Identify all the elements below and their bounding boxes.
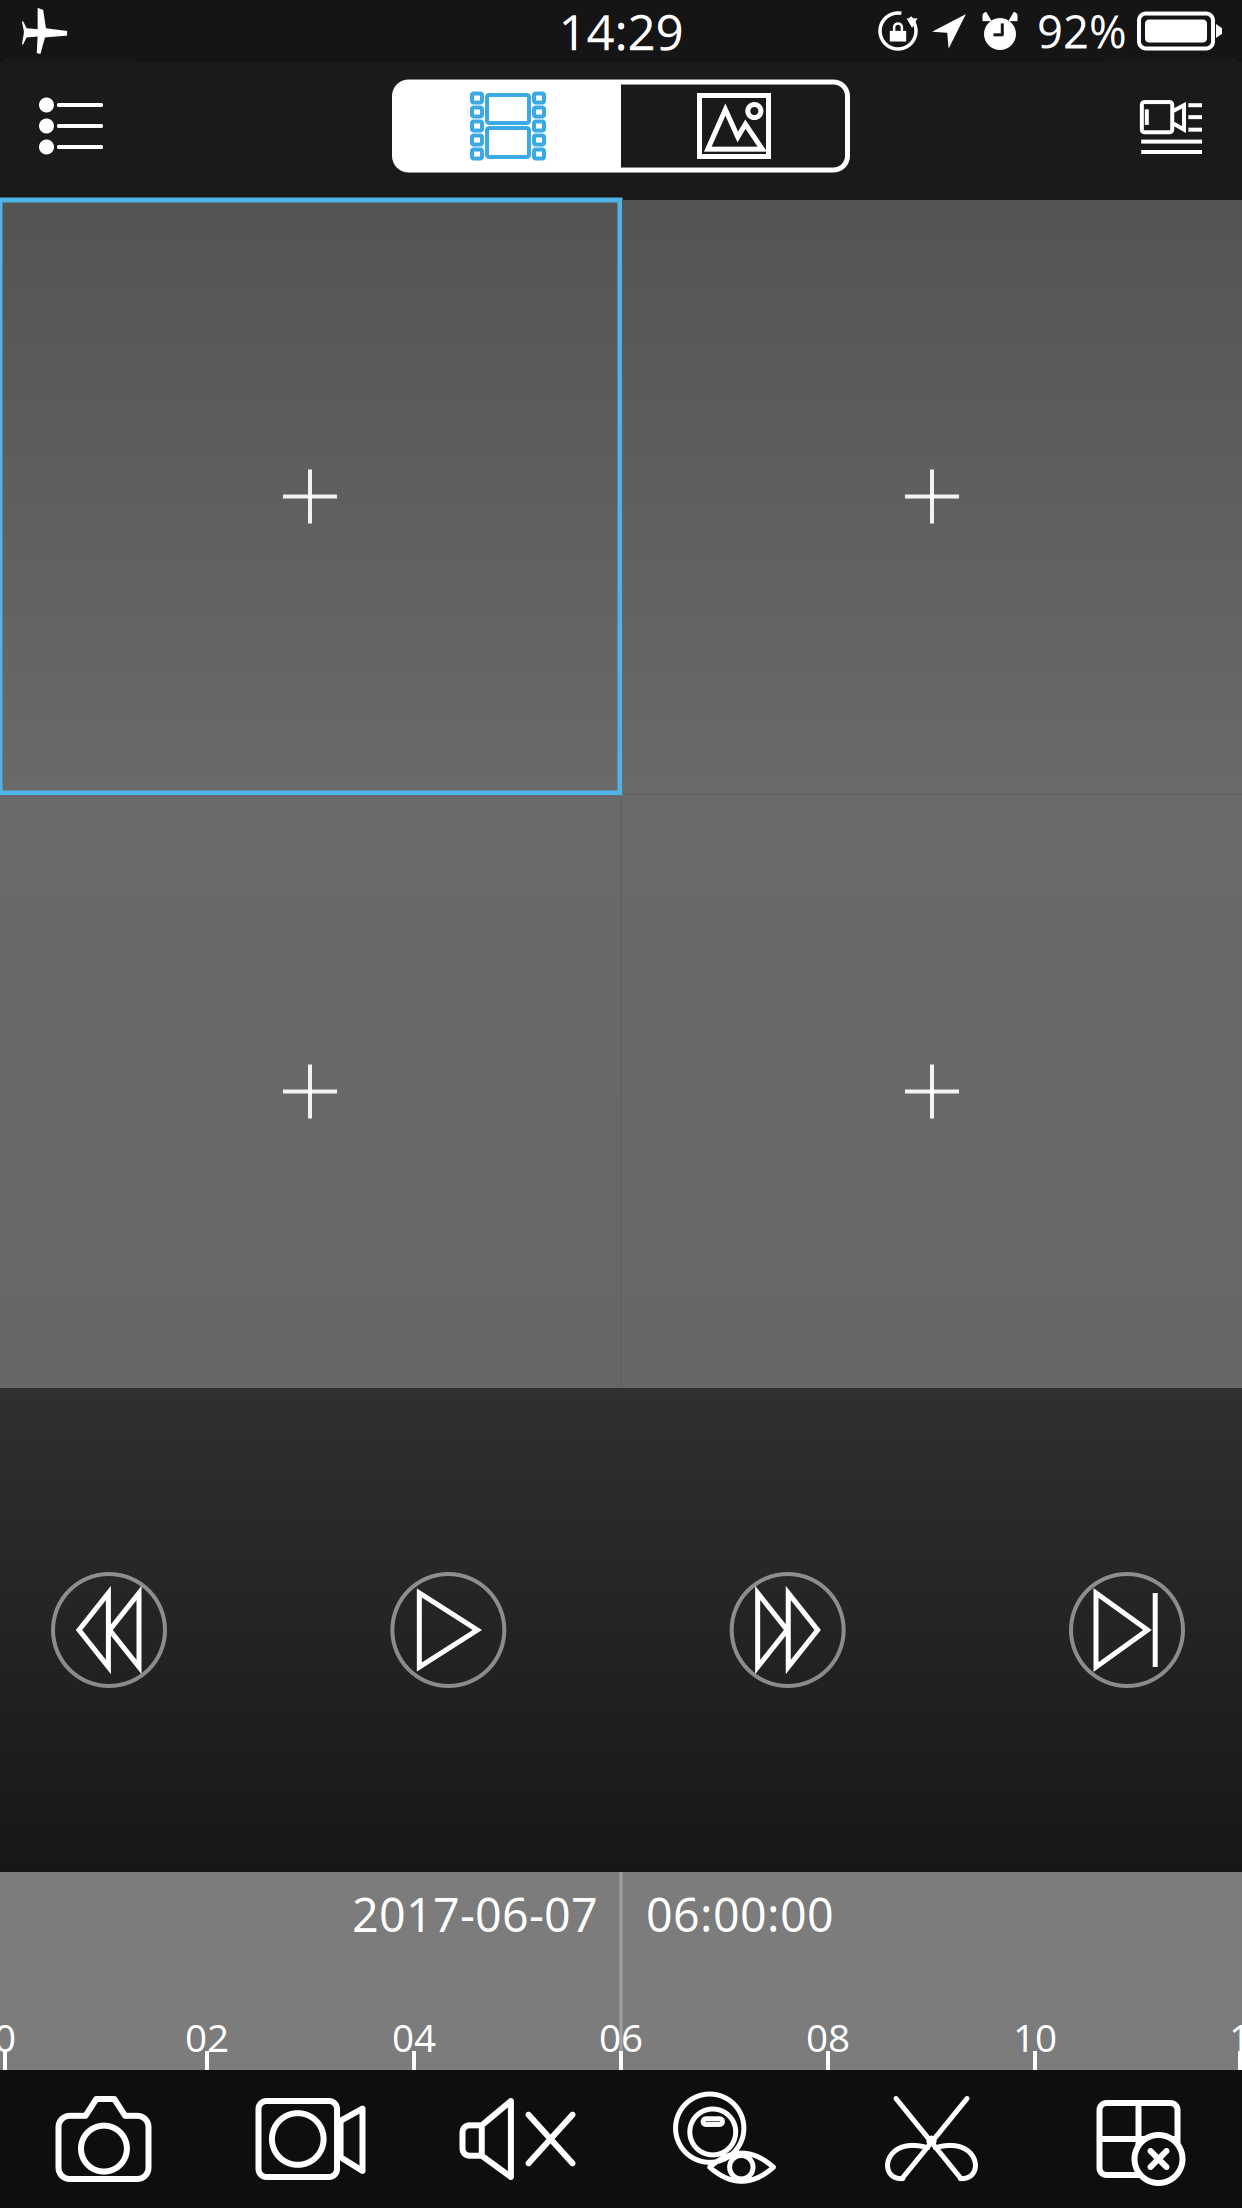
button[interactable]: Device list xyxy=(5,59,137,193)
button[interactable]: Record xyxy=(207,2070,414,2208)
button[interactable]: Mute xyxy=(414,2070,621,2208)
button[interactable]: Camera channel xyxy=(0,200,620,793)
staticText: 0 xyxy=(0,2011,16,2063)
staticText: 02 xyxy=(185,2011,229,2063)
button[interactable]: Camera channel xyxy=(622,795,1242,1388)
button[interactable]: Camera channel xyxy=(0,795,620,1388)
button[interactable]: Play xyxy=(392,1574,504,1686)
staticText: 10 xyxy=(1013,2011,1057,2063)
button[interactable]: Next xyxy=(1071,1574,1183,1686)
staticText: 06:00:00 xyxy=(646,1883,834,1945)
staticText: 08 xyxy=(806,2011,850,2063)
button[interactable]: Pictures xyxy=(621,82,847,169)
button[interactable]: Rewind xyxy=(53,1574,165,1686)
staticText: 2017-06-07 xyxy=(352,1883,598,1945)
button[interactable]: Snapshot xyxy=(0,2070,207,2208)
button[interactable]: Recordings xyxy=(1105,59,1237,193)
button[interactable]: Clip xyxy=(828,2070,1035,2208)
staticText: 14:29 xyxy=(558,0,683,64)
staticText: 06 xyxy=(599,2011,643,2063)
button[interactable]: Fast forward xyxy=(732,1574,844,1686)
staticText: 04 xyxy=(392,2011,436,2063)
button[interactable]: Live view xyxy=(395,82,621,169)
button[interactable]: Camera channel xyxy=(622,200,1242,793)
button[interactable]: PTZ control xyxy=(621,2070,828,2208)
staticText: 92% xyxy=(1037,1,1127,61)
button[interactable]: Close all xyxy=(1035,2070,1242,2208)
staticText: 1 xyxy=(1229,2011,1242,2063)
